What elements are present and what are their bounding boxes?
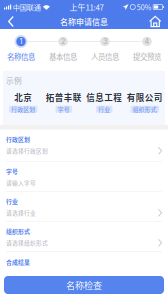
staticText: 示例	[6, 75, 22, 86]
staticText: 3	[103, 37, 107, 46]
staticText: 组织形式	[133, 105, 157, 114]
button[interactable]: 组织形式	[0, 222, 168, 252]
staticText: 名称检查	[66, 278, 102, 291]
staticText: 请选择组织形式	[6, 239, 48, 247]
staticText: 50%	[137, 2, 152, 12]
staticText: 名称申请信息	[60, 16, 108, 27]
staticText: 1	[19, 37, 22, 46]
staticText: 北京	[14, 91, 32, 103]
staticText: 中国联通	[13, 2, 41, 12]
staticText: 合成结果	[6, 258, 30, 266]
staticText: 请输入字号	[6, 179, 36, 187]
staticText: 组织形式	[6, 227, 30, 236]
staticText: 提交预览	[133, 51, 161, 62]
staticText: 信息工程	[86, 91, 122, 103]
staticText: 字号	[58, 105, 70, 114]
staticText: 基本信息	[49, 51, 77, 62]
staticText: 字号	[6, 167, 18, 176]
staticText: 4	[144, 37, 149, 46]
staticText: 人员信息	[91, 51, 119, 62]
staticText: 行政区划	[6, 135, 30, 144]
button[interactable]: 返回	[0, 14, 22, 29]
button[interactable]: 行政区划	[0, 130, 168, 162]
button[interactable]: 名称检查	[4, 276, 164, 294]
staticText: 请选择行政区划	[6, 147, 48, 155]
staticText: 行业	[98, 105, 110, 114]
button[interactable]: 行业	[0, 192, 168, 222]
staticText: 拓普丰联	[46, 91, 82, 103]
staticText: 上午11:47	[70, 1, 104, 13]
staticText: 2	[61, 37, 65, 46]
button[interactable]: 首页	[142, 14, 168, 29]
staticText: 有限公司	[127, 91, 163, 103]
staticText: 行业	[6, 197, 18, 206]
button[interactable]: 字号	[0, 162, 168, 192]
staticText: 名称信息	[7, 51, 35, 62]
staticText: 请选择行业	[6, 209, 36, 217]
staticText: 行政区划	[11, 105, 35, 114]
